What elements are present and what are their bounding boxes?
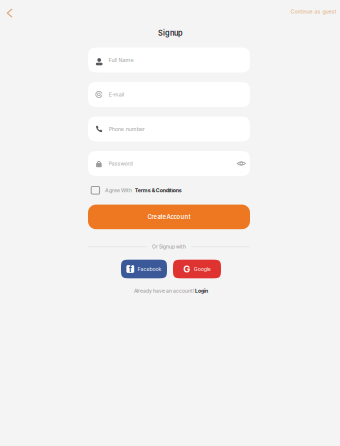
staticText: Or Signup with xyxy=(152,244,186,250)
button[interactable]: Already have an account! xyxy=(134,286,208,296)
button[interactable]: Password xyxy=(88,151,250,176)
button[interactable]: Create Account xyxy=(88,205,250,229)
button[interactable]: Continue as guest xyxy=(287,5,339,18)
button[interactable]: f xyxy=(121,260,167,278)
staticText: Already have an account! xyxy=(134,288,195,294)
staticText: Login xyxy=(195,288,208,294)
staticText: Signup xyxy=(158,29,183,37)
button[interactable]: G xyxy=(173,260,221,278)
staticText: Create Account xyxy=(147,213,190,220)
button[interactable]: Back xyxy=(2,5,18,21)
button[interactable]: Phone number xyxy=(88,116,250,141)
staticText: Continue as guest xyxy=(290,8,336,15)
button[interactable]: Full Name xyxy=(88,47,250,72)
staticText: Full Name xyxy=(108,57,133,63)
staticText: Terms & Conditions xyxy=(135,187,182,193)
staticText: Google xyxy=(194,266,211,272)
staticText: G xyxy=(183,263,190,275)
staticText: Agree With xyxy=(105,187,133,193)
button[interactable]: Agree With xyxy=(88,184,250,196)
staticText: E-mail xyxy=(109,91,124,98)
staticText: Phone number xyxy=(109,126,145,132)
button[interactable]: E-mail xyxy=(88,82,250,107)
staticText: f xyxy=(129,264,132,274)
staticText: Facebook xyxy=(138,266,162,272)
staticText: Password xyxy=(108,160,132,167)
